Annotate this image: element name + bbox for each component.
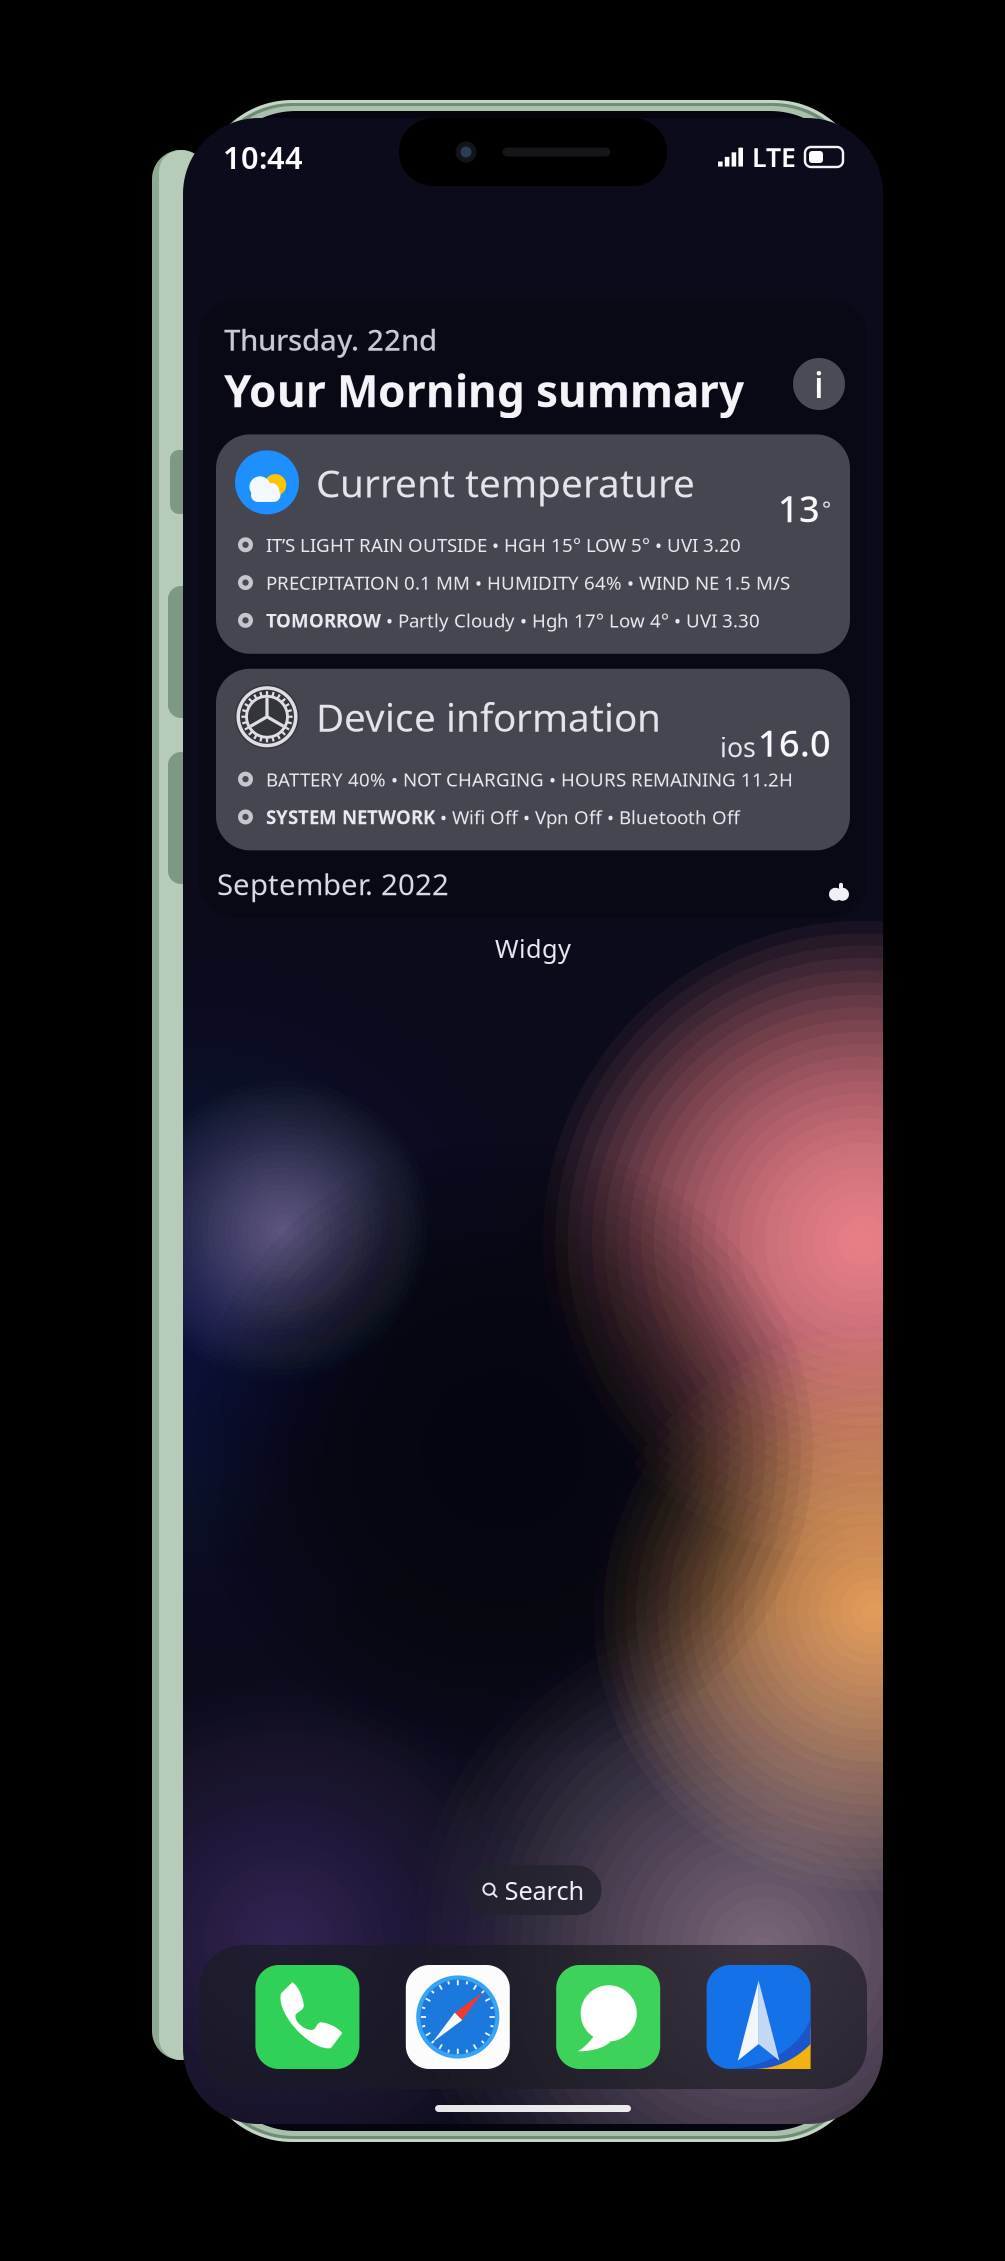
staticText: Search [504,1873,584,1907]
staticText: i [814,360,824,408]
staticText: IT’S LIGHT RAIN OUTSIDE • HGH 15° LOW 5°… [266,532,741,557]
staticText: PRECIPITATION 0.1 MM • HUMIDITY 64% • WI… [266,570,790,595]
staticText: ios [720,729,756,765]
button[interactable]: Widget info [793,358,845,410]
button[interactable]: Spark [707,1965,811,2069]
staticText: LTE [752,139,796,175]
staticText: ° [822,494,831,522]
staticText: Widgy [495,931,571,965]
button[interactable]: Phone [255,1965,359,2069]
staticText: September. 2022 [217,864,449,903]
staticText: SYSTEM NETWORK [266,804,435,829]
staticText: • Partly Cloudy • Hgh 17° Low 4° • UVI 3… [381,608,760,633]
staticText: 16.0 [758,719,831,767]
staticText: 10:44 [223,137,303,177]
staticText: BATTERY 40% • NOT CHARGING • HOURS REMAI… [266,767,793,792]
staticText: • Wifi Off • Vpn Off • Bluetooth Off [435,804,740,829]
button[interactable]: Search [464,1865,601,1915]
button[interactable]: Messages [556,1965,660,2069]
staticText: 13 [778,484,820,532]
staticText: Thursday. 22nd [224,320,437,359]
staticText: Current temperature [316,457,695,508]
staticText: Device information [316,691,661,742]
button[interactable]: Safari [406,1965,510,2069]
staticText: TOMORROW [266,608,381,633]
staticText: Your Morning summary [224,361,744,419]
